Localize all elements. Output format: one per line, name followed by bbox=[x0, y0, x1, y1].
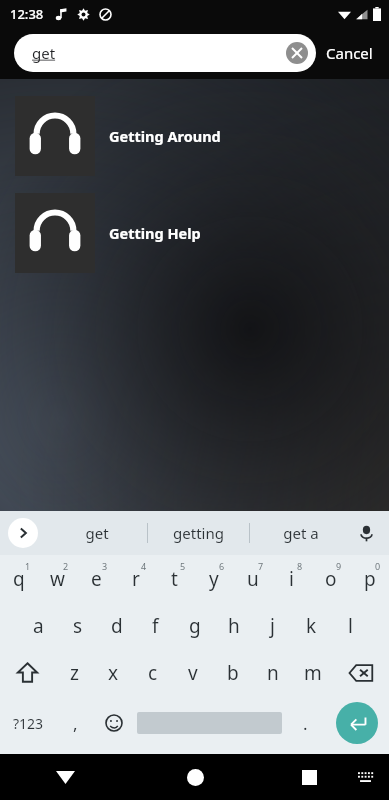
staticText: p bbox=[364, 566, 376, 592]
button[interactable]: Cancel bbox=[316, 37, 375, 69]
staticText: z bbox=[70, 660, 79, 686]
button[interactable]: Keyboard active bbox=[347, 759, 383, 795]
button[interactable]: Getting Around bbox=[0, 96, 389, 176]
button[interactable]: , bbox=[56, 696, 94, 750]
button[interactable]: w bbox=[38, 555, 77, 602]
button[interactable]: v bbox=[173, 649, 213, 696]
button[interactable]: d bbox=[97, 602, 136, 649]
staticText: . bbox=[303, 712, 308, 735]
staticText: g bbox=[189, 613, 201, 639]
staticText: 4 bbox=[141, 560, 147, 572]
staticText: Getting Around bbox=[109, 126, 221, 146]
staticText: 5 bbox=[180, 560, 186, 572]
staticText: k bbox=[306, 613, 317, 639]
button[interactable]: p bbox=[350, 555, 389, 602]
button[interactable]: o bbox=[311, 555, 350, 602]
button[interactable]: Backspace bbox=[333, 649, 389, 696]
staticText: e bbox=[91, 566, 102, 592]
button[interactable]: e bbox=[77, 555, 116, 602]
staticText: 1 bbox=[25, 560, 31, 572]
staticText: get bbox=[32, 43, 286, 63]
staticText: r bbox=[132, 566, 140, 592]
staticText: , bbox=[73, 712, 78, 735]
staticText: m bbox=[304, 660, 322, 686]
staticText: 12:38 bbox=[10, 5, 44, 23]
button[interactable]: i bbox=[272, 555, 311, 602]
staticText: getting bbox=[173, 523, 224, 543]
staticText: 3 bbox=[102, 560, 108, 572]
staticText: l bbox=[348, 613, 353, 639]
staticText: s bbox=[73, 613, 83, 639]
staticText: c bbox=[148, 660, 158, 686]
staticText: h bbox=[228, 613, 240, 639]
button[interactable]: Voice input bbox=[351, 518, 381, 548]
staticText: 7 bbox=[258, 560, 264, 572]
button[interactable]: . bbox=[285, 696, 325, 750]
staticText: Getting Help bbox=[109, 223, 201, 243]
button[interactable]: More suggestions bbox=[8, 518, 38, 548]
staticText: y bbox=[209, 566, 219, 592]
staticText: get a bbox=[283, 523, 319, 543]
button[interactable]: u bbox=[233, 555, 272, 602]
staticText: w bbox=[50, 566, 65, 592]
button[interactable]: l bbox=[331, 602, 370, 649]
staticText: ?123 bbox=[13, 714, 44, 733]
button[interactable]: get bbox=[46, 511, 147, 555]
staticText: b bbox=[227, 660, 239, 686]
staticText: i bbox=[289, 566, 294, 592]
staticText: 8 bbox=[297, 560, 303, 572]
staticText: t bbox=[171, 566, 178, 592]
button[interactable]: a bbox=[19, 602, 58, 649]
staticText: u bbox=[247, 566, 259, 592]
staticText: f bbox=[152, 613, 159, 639]
staticText: o bbox=[325, 566, 337, 592]
staticText: n bbox=[267, 660, 279, 686]
button[interactable]: m bbox=[293, 649, 333, 696]
button[interactable]: Clear search bbox=[286, 42, 308, 64]
button[interactable]: f bbox=[136, 602, 175, 649]
staticText: get bbox=[85, 523, 109, 543]
button[interactable]: s bbox=[58, 602, 97, 649]
button[interactable]: c bbox=[133, 649, 173, 696]
staticText: 0 bbox=[375, 560, 381, 572]
button[interactable]: k bbox=[292, 602, 331, 649]
staticText: a bbox=[33, 613, 44, 639]
button[interactable]: z bbox=[55, 649, 94, 696]
button[interactable]: Getting Help bbox=[0, 193, 389, 273]
staticText: Cancel bbox=[326, 43, 373, 63]
staticText: d bbox=[111, 613, 123, 639]
button[interactable]: Enter bbox=[336, 702, 378, 744]
button[interactable]: Space bbox=[134, 696, 285, 750]
button[interactable]: ?123 bbox=[0, 696, 56, 750]
button[interactable]: t bbox=[155, 555, 194, 602]
button[interactable]: x bbox=[94, 649, 133, 696]
button[interactable]: b bbox=[213, 649, 253, 696]
button[interactable]: r bbox=[116, 555, 155, 602]
button[interactable]: getting bbox=[148, 511, 249, 555]
staticText: 6 bbox=[219, 560, 225, 572]
button[interactable]: get bbox=[14, 34, 316, 72]
button[interactable]: Home bbox=[150, 754, 240, 800]
button[interactable]: g bbox=[175, 602, 214, 649]
button[interactable]: Shift bbox=[0, 649, 55, 696]
button[interactable]: h bbox=[214, 602, 253, 649]
button[interactable]: j bbox=[253, 602, 292, 649]
staticText: 2 bbox=[63, 560, 69, 572]
button[interactable]: Emoji bbox=[94, 696, 134, 750]
button[interactable]: get a bbox=[250, 511, 351, 555]
staticText: q bbox=[13, 566, 25, 592]
staticText: x bbox=[108, 660, 119, 686]
button[interactable]: n bbox=[253, 649, 293, 696]
button[interactable]: y bbox=[194, 555, 233, 602]
staticText: v bbox=[188, 660, 198, 686]
staticText: 9 bbox=[336, 560, 342, 572]
button[interactable]: Recents bbox=[274, 754, 344, 800]
staticText: j bbox=[270, 613, 275, 639]
button[interactable]: q bbox=[0, 555, 38, 602]
button[interactable]: Back bbox=[0, 754, 130, 800]
